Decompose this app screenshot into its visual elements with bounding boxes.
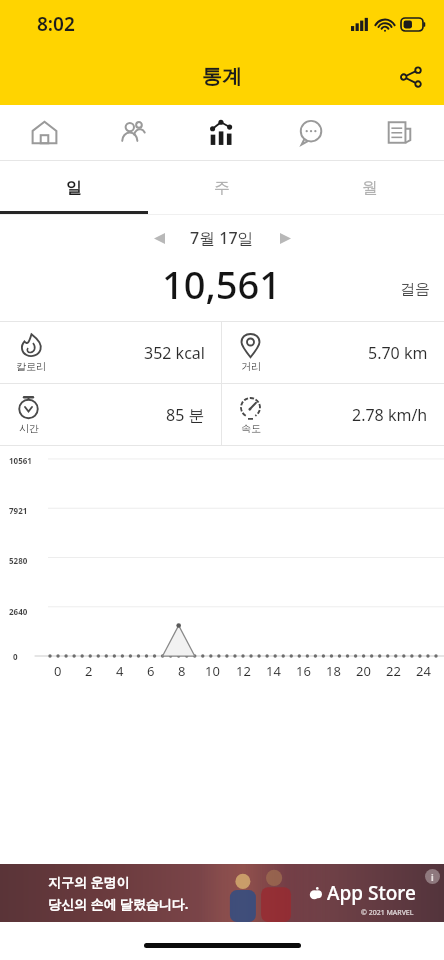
staticText: 6	[147, 662, 155, 680]
button[interactable]: Ad info	[425, 869, 440, 884]
button[interactable]: 시간	[0, 384, 221, 445]
button[interactable]: 지구의 운명이	[0, 864, 444, 922]
staticText: 거리	[241, 360, 261, 373]
button[interactable]: Previous day	[142, 221, 176, 255]
staticText: 걸음	[400, 280, 430, 299]
staticText: 85 분	[166, 404, 205, 426]
button[interactable]: Home	[0, 105, 88, 160]
staticText: 10,561	[162, 258, 282, 308]
button[interactable]: 월	[296, 161, 444, 214]
staticText: 18	[326, 662, 341, 680]
button[interactable]: Chat	[266, 105, 355, 160]
staticText: 월	[362, 178, 378, 198]
staticText: 10561	[9, 455, 32, 466]
staticText: © 2021 MARVEL	[361, 908, 414, 918]
button[interactable]: 일	[0, 161, 148, 214]
staticText: 일	[66, 178, 82, 198]
staticText: 5280	[9, 555, 28, 566]
staticText: 8:02	[37, 11, 75, 37]
staticText: 당신의 손에 달렸습니다.	[48, 895, 189, 913]
staticText: 352 kcal	[144, 342, 205, 364]
staticText: 2.78 km/h	[352, 404, 428, 426]
staticText: 10	[205, 662, 220, 680]
staticText: 2640	[9, 606, 28, 617]
staticText: 5.70 km	[368, 342, 428, 364]
button[interactable]: Next day	[268, 221, 302, 255]
staticText: 7월 17일	[190, 227, 254, 249]
staticText: 2	[85, 662, 93, 680]
staticText: 7921	[9, 505, 28, 516]
staticText: 지구의 운명이	[48, 873, 130, 891]
button[interactable]: Friends	[88, 105, 177, 160]
button[interactable]: Share	[388, 54, 434, 100]
staticText: 24	[416, 662, 431, 680]
staticText: 시간	[19, 422, 39, 435]
staticText: 4	[116, 662, 124, 680]
staticText: 8	[178, 662, 186, 680]
staticText: 20	[356, 662, 371, 680]
button[interactable]: 거리	[222, 322, 444, 383]
staticText: 통계	[202, 64, 242, 89]
staticText: 14	[266, 662, 281, 680]
staticText: 0	[13, 651, 18, 662]
staticText: 주	[214, 178, 230, 198]
staticText: 16	[296, 662, 311, 680]
staticText: 0	[54, 662, 62, 680]
staticText: 속도	[241, 422, 261, 435]
button[interactable]: Statistics	[177, 105, 266, 160]
button[interactable]: 속도	[222, 384, 444, 445]
staticText: 칼로리	[16, 360, 46, 373]
staticText: i	[431, 871, 434, 883]
staticText: App Store	[327, 880, 416, 906]
staticText: 12	[236, 662, 251, 680]
button[interactable]: 칼로리	[0, 322, 221, 383]
button[interactable]: News	[355, 105, 444, 160]
staticText: 22	[386, 662, 401, 680]
button[interactable]: 주	[148, 161, 296, 214]
